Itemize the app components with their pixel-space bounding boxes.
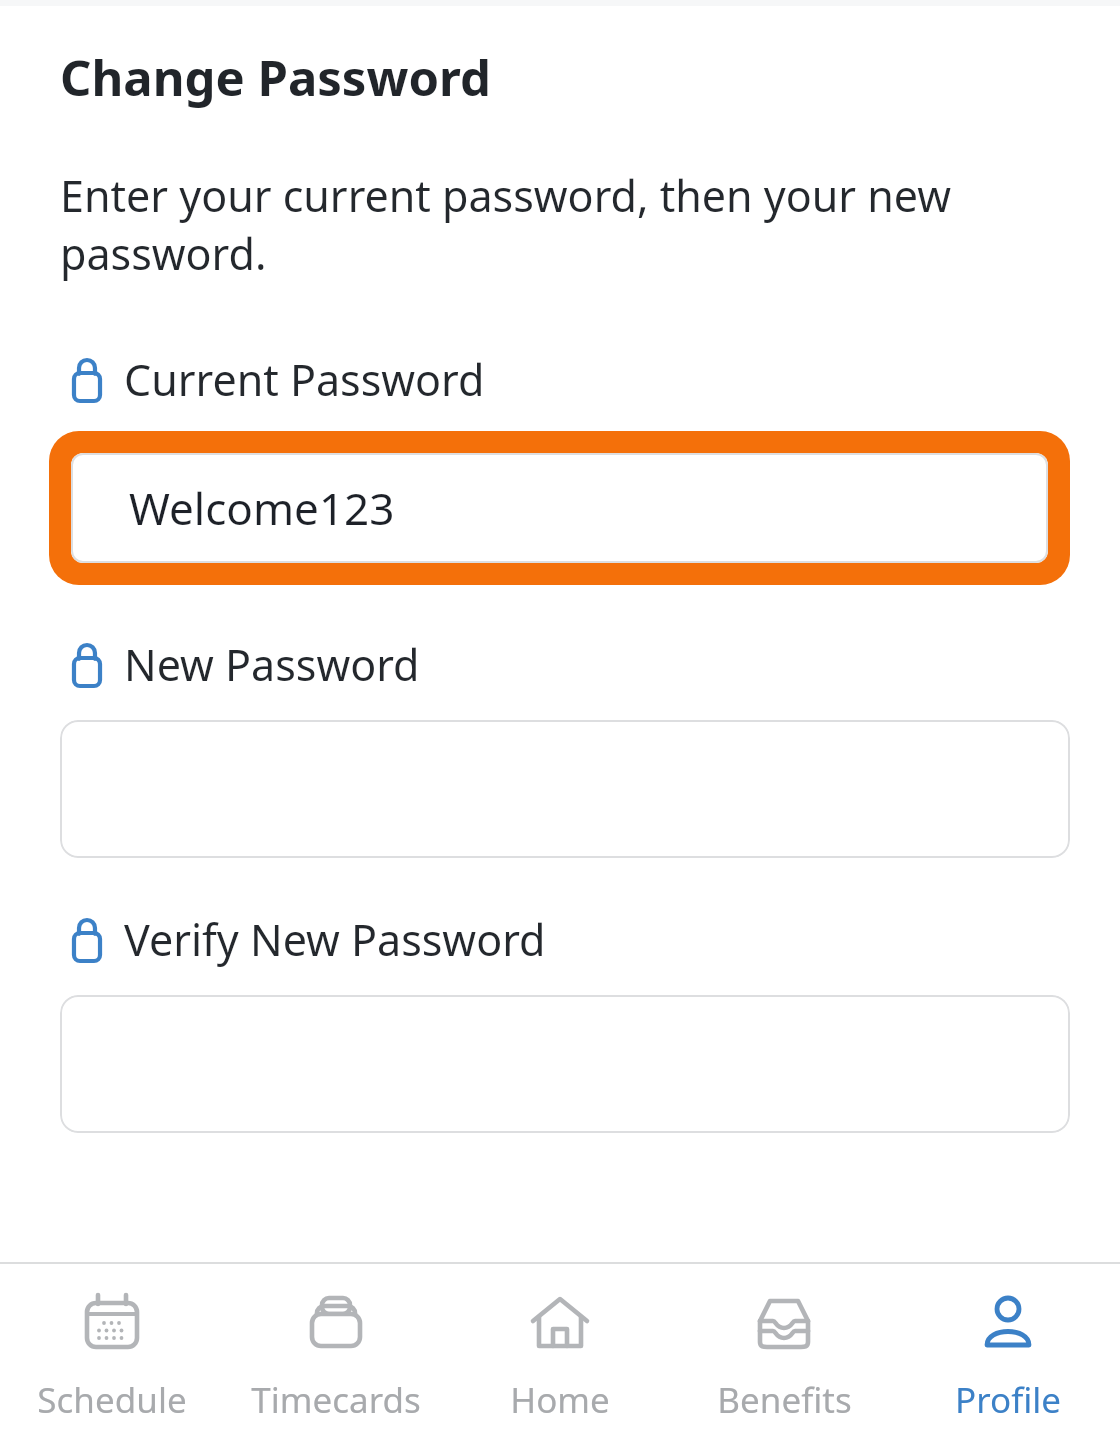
button[interactable]: Welcome123 bbox=[49, 431, 1070, 585]
staticText: Current Password bbox=[124, 350, 485, 409]
button[interactable]: Benefits bbox=[672, 1264, 896, 1443]
button[interactable]: Profile bbox=[896, 1264, 1120, 1443]
staticText: Timecards bbox=[251, 1376, 421, 1424]
staticText: Welcome123 bbox=[129, 478, 395, 538]
button[interactable]: Schedule bbox=[0, 1264, 224, 1443]
staticText: Change Password bbox=[60, 44, 491, 111]
staticText: New Password bbox=[124, 635, 420, 694]
button[interactable]: Timecards bbox=[224, 1264, 448, 1443]
staticText: Enter your current password, then your n… bbox=[60, 166, 1036, 282]
button[interactable] bbox=[60, 720, 1070, 858]
staticText: Benefits bbox=[717, 1376, 852, 1424]
button[interactable]: Home bbox=[448, 1264, 672, 1443]
staticText: Home bbox=[510, 1376, 610, 1424]
staticText: Verify New Password bbox=[124, 910, 546, 969]
staticText: Schedule bbox=[37, 1376, 187, 1424]
staticText: Profile bbox=[955, 1376, 1061, 1424]
button[interactable] bbox=[60, 995, 1070, 1133]
